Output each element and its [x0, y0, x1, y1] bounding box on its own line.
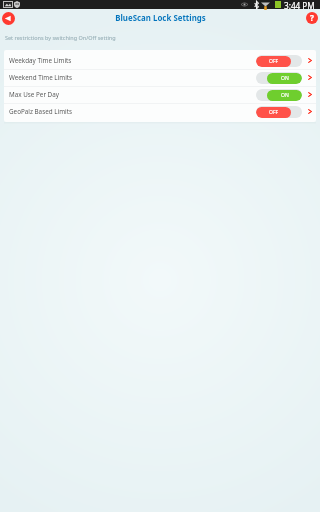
button[interactable]: Help: [306, 12, 318, 24]
staticText: Set restrictions by switching On/Off set…: [5, 34, 116, 41]
button[interactable]: Toggle off: [256, 55, 302, 67]
staticText: ON: [281, 75, 289, 82]
staticText: Weekday Time Limits: [9, 56, 72, 65]
button[interactable]: GeoPalz Based Limits: [4, 103, 316, 120]
button[interactable]: Weekday Time Limits: [4, 52, 316, 69]
staticText: OFF: [269, 109, 279, 116]
button[interactable]: Back: [2, 12, 15, 25]
staticText: 3:44 PM: [284, 0, 315, 9]
button[interactable]: Toggle on: [256, 89, 302, 101]
button[interactable]: Toggle off: [256, 106, 302, 118]
button[interactable]: Max Use Per Day: [4, 86, 316, 103]
staticText: ON: [281, 92, 289, 99]
staticText: BlueScan Lock Settings: [115, 13, 206, 24]
staticText: OFF: [269, 58, 279, 65]
button[interactable]: Toggle on: [256, 72, 302, 84]
staticText: Max Use Per Day: [9, 90, 59, 99]
staticText: ?: [310, 12, 314, 23]
staticText: GeoPalz Based Limits: [9, 107, 72, 116]
button[interactable]: Weekend Time Limits: [4, 69, 316, 86]
staticText: Weekend Time Limits: [9, 73, 73, 82]
